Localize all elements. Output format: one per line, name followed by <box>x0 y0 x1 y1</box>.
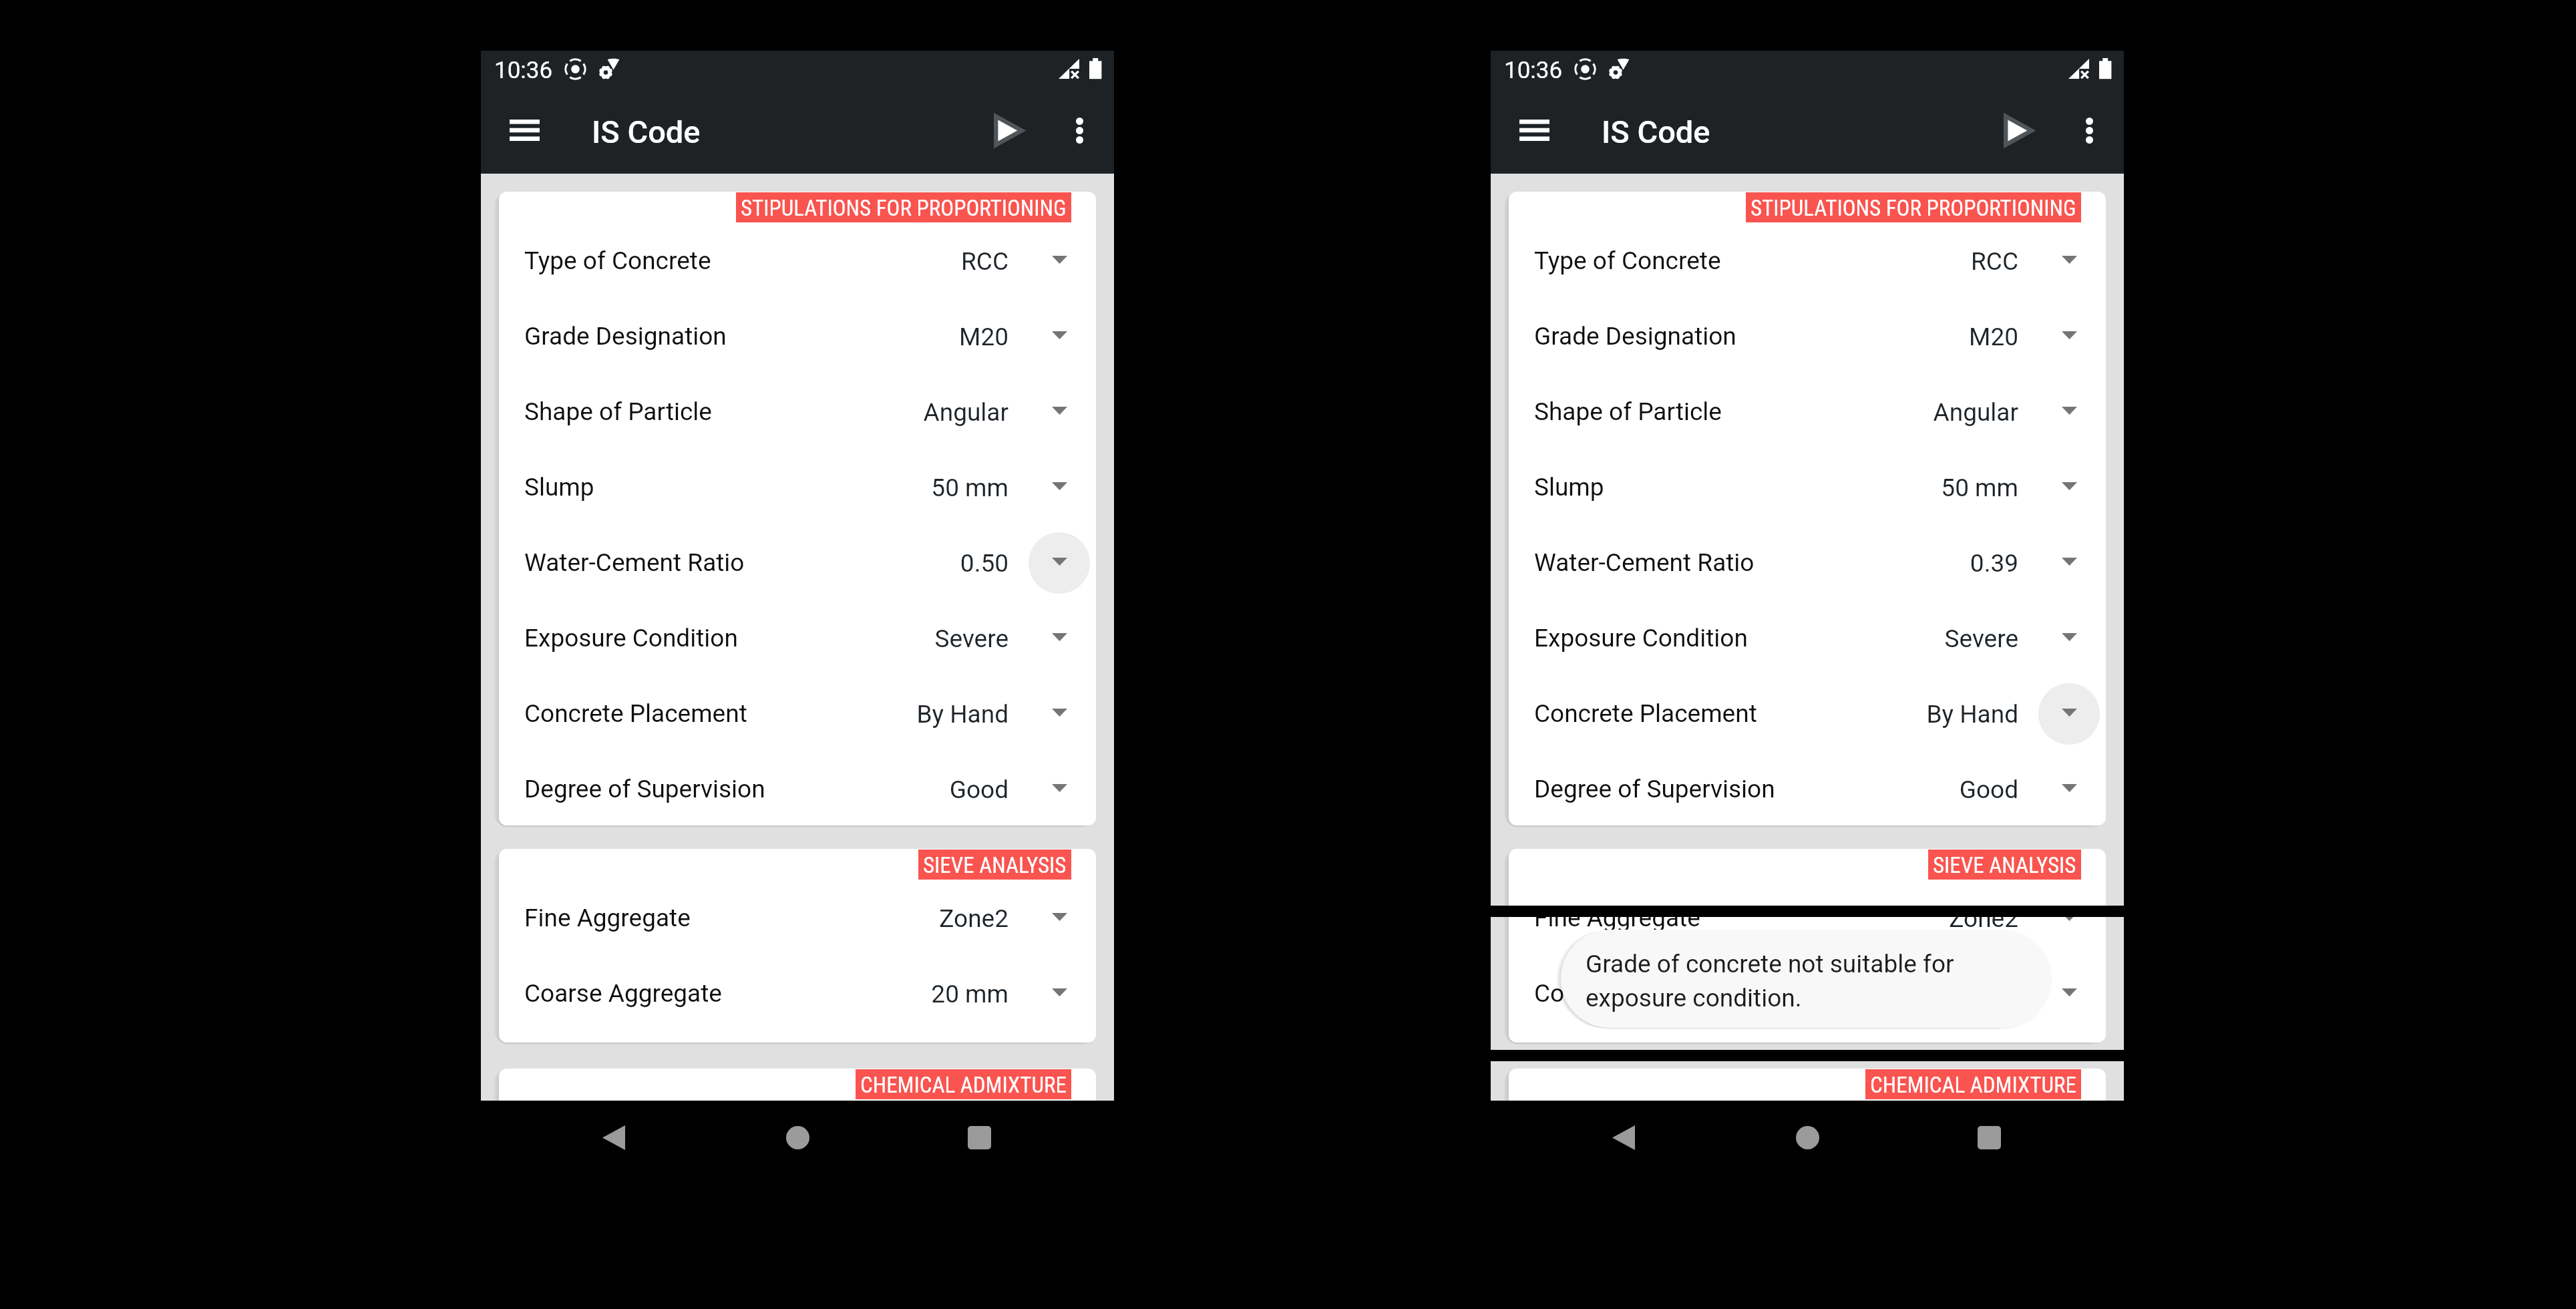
button[interactable]: Degree of Supervision <box>499 751 1096 825</box>
staticText: IS Code <box>1602 114 1710 150</box>
button[interactable]: Run calculation <box>994 114 1024 147</box>
staticText: Grade Designation <box>524 322 727 351</box>
button[interactable]: Shape of Particle <box>499 374 1096 449</box>
other: Change Type of Concrete <box>2062 256 2077 264</box>
staticText: Angular <box>826 398 1008 427</box>
staticText: Fine Aggregate <box>524 904 691 932</box>
button[interactable]: Fine Aggregate <box>499 880 1096 956</box>
staticText: By Hand <box>1836 700 2018 729</box>
button[interactable]: Exposure Condition <box>499 600 1096 676</box>
staticText: Water-Cement Ratio <box>1534 548 1755 577</box>
staticText: Slump <box>1534 473 1604 502</box>
staticText: STIPULATIONS FOR PROPORTIONING <box>741 195 1067 221</box>
other: Change Coarse Aggregate <box>2062 988 2077 996</box>
button[interactable]: Back <box>1612 1125 1635 1150</box>
other: Change Slump <box>1052 482 1067 490</box>
button[interactable]: Slump <box>1509 449 2106 525</box>
button[interactable]: Type of Concrete <box>1509 223 2106 299</box>
button[interactable]: Degree of Supervision <box>1509 751 2106 825</box>
staticText: STIPULATIONS FOR PROPORTIONING <box>1751 195 2076 221</box>
button[interactable]: Open navigation drawer <box>1519 120 1549 141</box>
other: Change Shape of Particle <box>2062 407 2077 415</box>
button[interactable]: Recent apps <box>1978 1126 2001 1149</box>
staticText: Concrete Placement <box>1534 699 1757 728</box>
other: Change Grade Designation <box>1052 331 1067 339</box>
staticText: Grade of concrete not suitable for expos… <box>1586 950 2030 1012</box>
staticText: Angular <box>1836 398 2018 427</box>
staticText: SIEVE ANALYSIS <box>923 852 1067 878</box>
other: Change Slump <box>2062 482 2077 490</box>
staticText: 10:36 <box>1504 57 1563 84</box>
staticText: Exposure Condition <box>1534 624 1748 652</box>
staticText: Concrete Placement <box>524 699 747 728</box>
staticText: Coarse Aggregate <box>1534 979 1732 1008</box>
staticText: 50 mm <box>826 474 1008 502</box>
button[interactable]: Coarse Aggregate <box>1509 956 2106 1031</box>
button[interactable]: Open navigation drawer <box>510 120 540 141</box>
other: Change Degree of Supervision <box>2062 784 2077 792</box>
staticText: RCC <box>1836 247 2018 276</box>
staticText: Slump <box>524 473 594 502</box>
button[interactable]: Type of Concrete <box>499 223 1096 299</box>
staticText: M20 <box>1836 323 2018 351</box>
staticText: Severe <box>1836 624 2018 653</box>
staticText: Good <box>1836 775 2018 804</box>
other: Change Type of Concrete <box>1052 256 1067 264</box>
other: Change Shape of Particle <box>1052 407 1067 415</box>
staticText: Grade Designation <box>1534 322 1736 351</box>
button[interactable]: Grade Designation <box>499 299 1096 374</box>
button[interactable]: Shape of Particle <box>1509 374 2106 449</box>
other: Change Water-Cement Ratio <box>1052 558 1067 566</box>
other: Change Exposure Condition <box>1052 633 1067 641</box>
staticText: CHEMICAL ADMIXTURE <box>860 1072 1067 1098</box>
other: Change Grade Designation <box>2062 331 2077 339</box>
staticText: Shape of Particle <box>1534 397 1722 426</box>
other: Change Fine Aggregate <box>2062 913 2077 921</box>
staticText: SIEVE ANALYSIS <box>1933 852 2076 878</box>
staticText: 0.39 <box>1836 549 2018 578</box>
staticText: 20 mm <box>826 980 1008 1008</box>
other: Change Coarse Aggregate <box>1052 988 1067 996</box>
staticText: Fine Aggregate <box>1534 904 1700 932</box>
staticText: 50 mm <box>1836 474 2018 502</box>
staticText: Water-Cement Ratio <box>524 548 745 577</box>
button[interactable]: Slump <box>499 449 1096 525</box>
button[interactable]: Water-Cement Ratio <box>1509 525 2106 600</box>
staticText: 0.50 <box>826 549 1008 578</box>
button[interactable]: Exposure Condition <box>1509 600 2106 676</box>
button[interactable]: Concrete Placement <box>1509 676 2106 751</box>
staticText: Coarse Aggregate <box>524 979 722 1008</box>
button[interactable]: More options <box>2086 118 2093 144</box>
button[interactable]: Run calculation <box>2004 114 2034 147</box>
button[interactable]: Home <box>1796 1126 1819 1149</box>
staticText: Type of Concrete <box>524 246 711 275</box>
staticText: M20 <box>826 323 1008 351</box>
other: Change Fine Aggregate <box>1052 913 1067 921</box>
staticText: Good <box>826 775 1008 804</box>
button[interactable]: Home <box>786 1126 809 1149</box>
other: Change Exposure Condition <box>2062 633 2077 641</box>
other: Change Water-Cement Ratio <box>2062 558 2077 566</box>
staticText: Zone2 <box>826 904 1008 933</box>
button[interactable]: Coarse Aggregate <box>499 956 1096 1031</box>
staticText: Shape of Particle <box>524 397 712 426</box>
staticText: Zone2 <box>1836 904 2018 933</box>
button[interactable]: Back <box>602 1125 625 1150</box>
button[interactable]: Recent apps <box>968 1126 991 1149</box>
staticText: 10:36 <box>494 57 553 84</box>
button[interactable]: Water-Cement Ratio <box>499 525 1096 600</box>
staticText: Exposure Condition <box>524 624 738 652</box>
staticText: CHEMICAL ADMIXTURE <box>1870 1072 2076 1098</box>
button[interactable]: Fine Aggregate <box>1509 880 2106 956</box>
staticText: Type of Concrete <box>1534 246 1721 275</box>
other: Change Concrete Placement <box>1052 709 1067 717</box>
staticText: By Hand <box>826 700 1008 729</box>
button[interactable]: More options <box>1076 118 1083 144</box>
other: Change Concrete Placement <box>2062 709 2077 717</box>
staticText: Degree of Supervision <box>1534 775 1775 803</box>
button[interactable]: Grade Designation <box>1509 299 2106 374</box>
staticText: Degree of Supervision <box>524 775 765 803</box>
button[interactable]: Concrete Placement <box>499 676 1096 751</box>
staticText: RCC <box>826 247 1008 276</box>
